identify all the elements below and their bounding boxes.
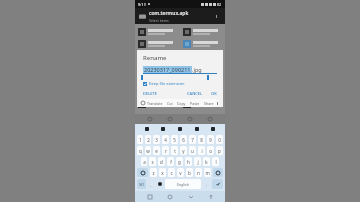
button[interactable]: Emoji [192, 124, 202, 134]
button[interactable]: Delete [165, 114, 175, 124]
button[interactable] [135, 62, 180, 74]
button[interactable]: Settings [158, 124, 168, 134]
staticText: l [215, 159, 217, 165]
staticText: x [161, 170, 164, 176]
staticText: m [205, 170, 210, 176]
button[interactable]: Back [185, 191, 196, 202]
staticText: 1 [139, 137, 142, 143]
button[interactable]: 3 [153, 135, 160, 144]
button[interactable] [180, 50, 225, 62]
button[interactable]: i [198, 146, 205, 155]
button[interactable]: y [180, 146, 187, 155]
button[interactable]: DELETE [143, 91, 157, 96]
button[interactable]: 7 [189, 135, 196, 144]
button[interactable]: 1 [137, 135, 143, 144]
button[interactable]: Translate [145, 101, 165, 106]
button[interactable]: More options [211, 11, 221, 21]
button[interactable]: d [158, 157, 165, 166]
button[interactable]: Share [202, 101, 216, 106]
staticText: y [182, 148, 185, 154]
button[interactable]: e [153, 146, 160, 155]
button[interactable]: Keep file extension [143, 81, 223, 86]
button[interactable]: n [195, 168, 202, 177]
staticText: q [139, 148, 142, 154]
button[interactable]: a [141, 157, 147, 166]
staticText: Rename [143, 54, 167, 62]
button[interactable]: English [165, 179, 201, 189]
staticText: 20230317_090211 [144, 66, 191, 73]
button[interactable]: Voice input [208, 124, 218, 134]
staticText: Cut [167, 101, 173, 106]
button[interactable] [135, 50, 180, 62]
button[interactable] [135, 98, 180, 110]
button[interactable]: x [159, 168, 166, 177]
button[interactable]: Paste [188, 101, 202, 106]
button[interactable]: Backspace [213, 168, 223, 177]
button[interactable]: k [203, 157, 210, 166]
button[interactable]: OK [211, 91, 217, 96]
button[interactable] [180, 74, 225, 86]
button[interactable]: p [216, 146, 223, 155]
button[interactable] [135, 38, 180, 50]
button[interactable]: Folder [135, 8, 225, 24]
staticText: s [151, 159, 154, 165]
button[interactable]: Clipboard [175, 124, 185, 134]
button[interactable]: 6 [180, 135, 187, 144]
staticText: a [143, 159, 146, 165]
button[interactable]: Cut [165, 101, 175, 106]
button[interactable] [135, 74, 180, 86]
button[interactable]: Comma [147, 178, 155, 190]
button[interactable]: !#1 [137, 179, 146, 189]
button[interactable]: o [207, 146, 214, 155]
button[interactable]: h [185, 157, 192, 166]
button[interactable]: l [212, 157, 219, 166]
button[interactable] [180, 38, 225, 50]
button[interactable]: t [171, 146, 178, 155]
button[interactable]: Enter [212, 179, 223, 189]
button[interactable]: j [194, 157, 201, 166]
button[interactable]: q [137, 146, 143, 155]
button[interactable]: 2 [145, 135, 151, 144]
button[interactable] [180, 62, 225, 74]
staticText: h [187, 159, 190, 165]
button[interactable]: Shift [137, 168, 148, 177]
button[interactable]: z [150, 168, 157, 177]
button[interactable] [135, 26, 180, 38]
button[interactable]: f [167, 157, 174, 166]
button[interactable]: 20230317_090211 [143, 66, 217, 73]
button[interactable]: Move [185, 114, 195, 124]
button[interactable]: CANCEL [187, 91, 203, 96]
button[interactable]: Settings [155, 178, 164, 190]
button[interactable]: 8 [198, 135, 205, 144]
button[interactable]: Home [164, 191, 175, 202]
button[interactable]: w [145, 146, 151, 155]
button[interactable]: g [176, 157, 183, 166]
staticText: Copy [177, 101, 186, 106]
staticText: j [197, 159, 199, 165]
staticText: g [178, 159, 181, 165]
button[interactable]: 0 [216, 135, 223, 144]
button[interactable]: u [189, 146, 196, 155]
button[interactable]: More [205, 114, 215, 124]
button[interactable] [180, 86, 225, 98]
button[interactable]: 5 [171, 135, 178, 144]
button[interactable]: b [186, 168, 193, 177]
button[interactable] [135, 86, 180, 98]
staticText: 82 [217, 2, 222, 7]
button[interactable]: 4 [162, 135, 169, 144]
button[interactable] [180, 26, 225, 38]
button[interactable]: v [177, 168, 184, 177]
button[interactable]: s [149, 157, 156, 166]
button[interactable]: Share [145, 114, 155, 124]
button[interactable]: 9 [207, 135, 214, 144]
button[interactable]: More [216, 99, 219, 107]
button[interactable]: Recents [144, 191, 155, 202]
button[interactable]: m [204, 168, 211, 177]
button[interactable]: Stickers [142, 124, 152, 134]
button[interactable]: r [162, 146, 169, 155]
button[interactable]: c [168, 168, 175, 177]
button[interactable]: Copy [175, 101, 188, 106]
button[interactable] [180, 98, 225, 110]
button[interactable]: Hide keyboard [205, 191, 216, 202]
